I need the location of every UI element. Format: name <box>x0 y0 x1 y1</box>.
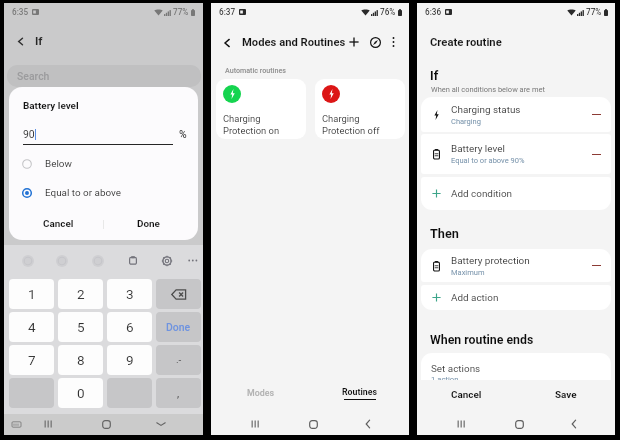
button[interactable]: Home <box>304 414 322 434</box>
button[interactable]: 0 <box>58 378 103 408</box>
button[interactable]: Equal to or above <box>9 184 198 202</box>
button[interactable]: , <box>156 378 201 408</box>
staticText: .- <box>176 354 182 366</box>
button[interactable]: Back <box>359 414 377 434</box>
staticText: 0 <box>77 385 85 401</box>
staticText: , <box>177 387 180 400</box>
button[interactable]: Hide keyboard <box>7 414 25 434</box>
staticText: 7 <box>28 352 36 368</box>
button[interactable]: Add condition <box>421 177 611 210</box>
button[interactable]: 5 <box>58 312 103 342</box>
button[interactable]: Search <box>7 65 201 87</box>
button[interactable]: Recent apps <box>452 414 470 434</box>
button[interactable]: Done <box>104 213 193 235</box>
button[interactable]: Back <box>219 35 234 50</box>
staticText: Add action <box>451 292 499 304</box>
button[interactable]: Charging Protection off <box>315 79 405 139</box>
staticText: 6:37 <box>219 7 236 17</box>
button[interactable]: Cancel <box>14 213 103 235</box>
button[interactable]: Save <box>516 384 615 405</box>
button[interactable]: More options <box>185 252 201 269</box>
button[interactable]: 9 <box>107 345 152 375</box>
staticText: Charging Protection off <box>322 113 380 137</box>
button[interactable]: Recent apps <box>39 414 57 434</box>
button[interactable]: Discover <box>367 34 383 50</box>
button[interactable]: Home <box>97 414 115 434</box>
staticText: When all conditions below are met <box>431 85 545 94</box>
staticText: 77% <box>173 7 189 17</box>
staticText: Charging <box>451 117 481 126</box>
staticText: 4 <box>28 319 36 335</box>
button[interactable]: Modes <box>211 381 310 405</box>
button[interactable]: Cancel <box>417 384 516 405</box>
button[interactable]: Back <box>565 414 583 434</box>
button[interactable]: Home <box>510 414 528 434</box>
staticText: % <box>179 128 187 140</box>
staticText: 9 <box>126 352 134 368</box>
staticText: Create routine <box>430 36 502 49</box>
button[interactable]: 2 <box>58 279 103 309</box>
staticText: Then <box>430 226 459 241</box>
staticText: 8 <box>77 352 85 368</box>
staticText: 1 <box>28 286 36 302</box>
button[interactable]: 1 <box>9 279 54 309</box>
staticText: 6 <box>126 319 134 335</box>
button[interactable]: Charging status <box>421 97 611 132</box>
button[interactable]: 3 <box>107 279 152 309</box>
staticText: Charging status <box>451 104 521 116</box>
button[interactable]: Routines <box>310 381 409 405</box>
staticText: Save <box>555 389 577 401</box>
button[interactable]: Charging Protection on <box>216 79 306 139</box>
button[interactable]: 6 <box>107 312 152 342</box>
staticText: 90 <box>23 128 35 140</box>
staticText: Battery level <box>23 100 79 112</box>
button[interactable]: Keyboard tool <box>19 252 36 269</box>
button[interactable]: Hide keyboard <box>152 414 170 434</box>
button[interactable]: Recent apps <box>246 414 264 434</box>
button[interactable]: Keyboard tool <box>53 252 70 269</box>
button[interactable]: Keyboard settings <box>158 252 175 269</box>
button[interactable]: Add action <box>421 285 611 310</box>
staticText: When routine ends <box>430 333 534 347</box>
button[interactable]: 7 <box>9 345 54 375</box>
button[interactable]: Done <box>156 312 201 342</box>
staticText: Modes and Routines <box>242 36 346 49</box>
staticText: 6:35 <box>12 7 29 17</box>
staticText: 3 <box>126 286 134 302</box>
staticText: Modes <box>247 388 274 398</box>
button[interactable]: 8 <box>58 345 103 375</box>
staticText: 2 <box>77 286 85 302</box>
button[interactable]: Back <box>13 34 27 48</box>
button[interactable]: 4 <box>9 312 54 342</box>
staticText: If <box>35 34 43 48</box>
staticText: Maximum <box>451 268 485 277</box>
staticText: 1 action <box>431 375 459 380</box>
staticText: Done <box>137 218 160 230</box>
button[interactable]: Clipboard <box>124 252 141 269</box>
staticText: Below <box>45 158 72 170</box>
button[interactable]: Set actions <box>421 353 611 380</box>
button[interactable]: Battery level <box>421 134 611 174</box>
staticText: Done <box>166 321 191 333</box>
staticText: Search <box>17 70 50 82</box>
button[interactable]: Keyboard tool <box>89 252 106 269</box>
staticText: Charging Protection on <box>223 113 280 137</box>
staticText: 77% <box>586 7 602 17</box>
button[interactable]: Remove <box>586 134 606 174</box>
staticText: Automatic routines <box>225 66 286 74</box>
button[interactable]: Remove <box>586 97 606 132</box>
staticText: Add condition <box>451 188 513 200</box>
staticText: Battery level <box>451 143 505 155</box>
button[interactable]: More options <box>386 34 401 49</box>
staticText: Battery protection <box>451 255 530 267</box>
button[interactable]: Below <box>9 155 198 173</box>
button[interactable]: .- <box>156 345 201 375</box>
button[interactable]: Delete <box>156 279 201 309</box>
button[interactable]: Battery protection <box>421 249 611 282</box>
button[interactable]: Remove <box>586 249 606 282</box>
button[interactable]: Add <box>346 34 362 50</box>
staticText: Equal to or above <box>45 187 121 199</box>
staticText: Cancel <box>43 218 74 230</box>
